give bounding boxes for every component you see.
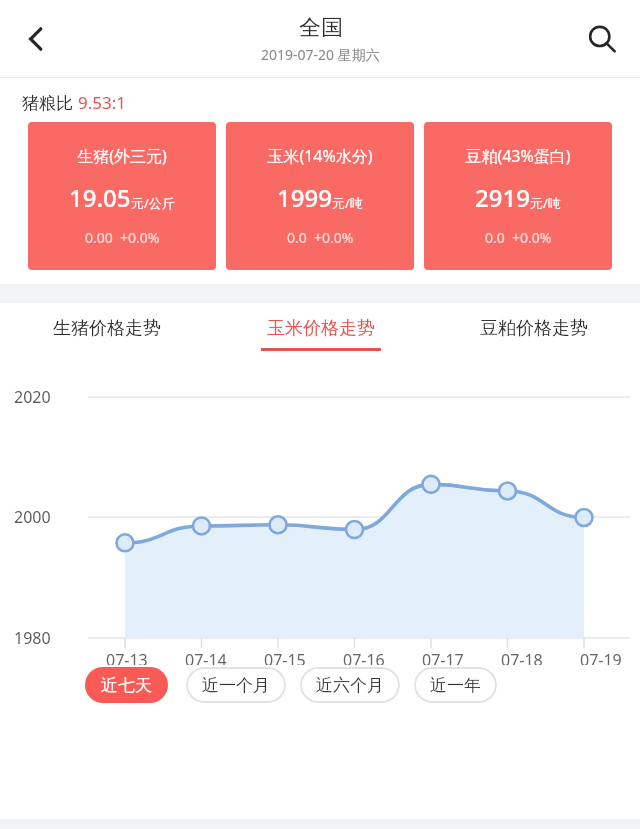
staticText: 07-18 xyxy=(501,649,543,665)
button[interactable]: 近七天 xyxy=(85,667,168,703)
staticText: 19.05 xyxy=(69,181,131,214)
staticText: 近一个月 xyxy=(202,675,270,696)
staticText: 猪粮比 xyxy=(22,91,78,114)
button[interactable]: 生猪(外三元) xyxy=(28,122,216,270)
staticText: 生猪价格走势 xyxy=(53,317,161,340)
staticText: 0.00 +0.0% xyxy=(85,228,160,247)
staticText: 07-15 xyxy=(264,649,306,665)
staticText: 1980 xyxy=(14,627,51,649)
button[interactable]: 近一个月 xyxy=(186,667,286,703)
staticText: 9.53:1 xyxy=(78,91,127,114)
staticText: 近六个月 xyxy=(316,675,384,696)
staticText: 07-19 xyxy=(580,649,622,665)
button[interactable]: 豆粕(43%蛋白) xyxy=(424,122,612,270)
staticText: 2000 xyxy=(14,506,51,528)
staticText: 元/吨 xyxy=(332,194,363,212)
staticText: 07-14 xyxy=(185,649,227,665)
button[interactable]: 生猪价格走势 xyxy=(0,303,214,365)
staticText: 生猪(外三元) xyxy=(77,145,167,167)
staticText: 近一年 xyxy=(430,675,481,696)
button[interactable]: 玉米(14%水分) xyxy=(226,122,414,270)
button[interactable]: 近一年 xyxy=(414,667,497,703)
staticText: 元/公斤 xyxy=(131,194,175,212)
staticText: 2919 xyxy=(475,181,530,214)
staticText: 全国 xyxy=(299,14,343,42)
button[interactable]: 近六个月 xyxy=(300,667,400,703)
staticText: 元/吨 xyxy=(530,194,561,212)
button[interactable]: 玉米价格走势 xyxy=(214,303,427,365)
staticText: 玉米价格走势 xyxy=(267,317,375,340)
staticText: 近七天 xyxy=(101,675,152,696)
button[interactable]: Back xyxy=(8,11,64,67)
staticText: 2020 xyxy=(14,386,51,408)
staticText: 07-16 xyxy=(343,649,385,665)
staticText: 07-17 xyxy=(422,649,464,665)
button[interactable]: Search xyxy=(574,11,630,67)
staticText: 07-13 xyxy=(106,649,148,665)
staticText: 0.0 +0.0% xyxy=(287,228,354,247)
staticText: 1999 xyxy=(277,181,332,214)
staticText: 玉米(14%水分) xyxy=(267,145,373,167)
staticText: 0.0 +0.0% xyxy=(485,228,552,247)
staticText: 2019-07-20 星期六 xyxy=(261,45,380,64)
staticText: 豆粕(43%蛋白) xyxy=(465,145,571,167)
staticText: 豆粕价格走势 xyxy=(480,317,588,340)
button[interactable]: 豆粕价格走势 xyxy=(427,303,640,365)
